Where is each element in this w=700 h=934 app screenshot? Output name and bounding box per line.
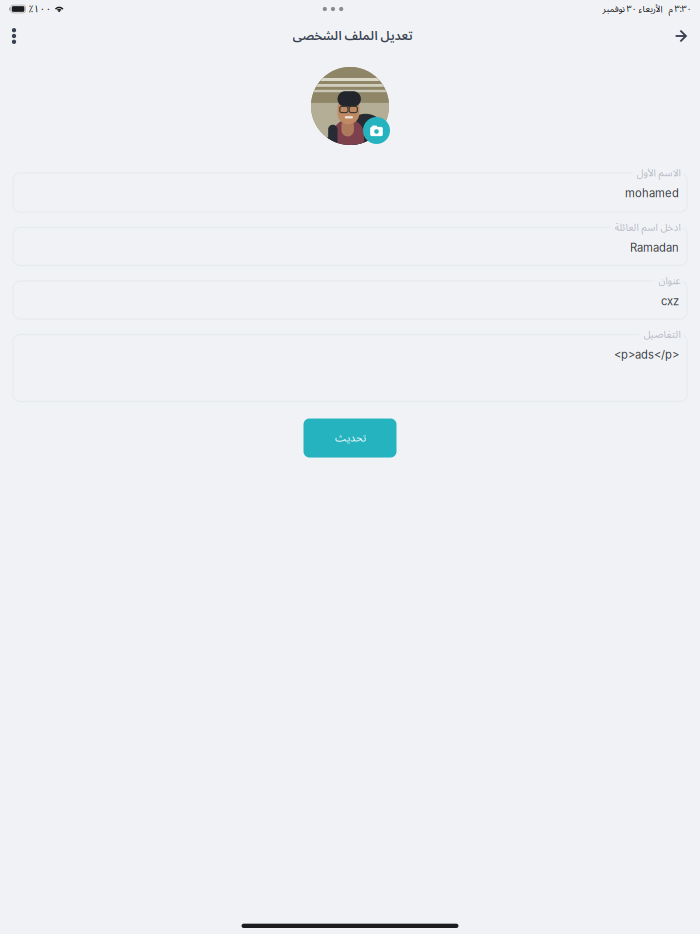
staticText: cxz	[661, 294, 679, 308]
staticText: التفاصيل	[643, 324, 680, 345]
staticText: تحديث	[334, 427, 365, 449]
button[interactable]: More options	[0, 19, 28, 53]
button[interactable]: Back	[668, 19, 694, 53]
staticText: ٪١٠٠	[28, 0, 51, 19]
button[interactable]: Change profile photo	[310, 67, 390, 145]
staticText: الاسم الأول	[636, 162, 680, 183]
staticText: mohamed	[625, 186, 679, 200]
staticText: Ramadan	[630, 241, 679, 255]
staticText: <p>ads</p>	[614, 348, 679, 362]
staticText: ادخل اسم العائلة	[614, 217, 680, 238]
button[interactable]: تحديث	[303, 418, 396, 457]
staticText: عنوان	[658, 270, 680, 291]
staticText: تعديل الملف الشخصى	[292, 23, 412, 49]
staticText: ٣:٣٠ م الأربعاء ٣٠ نوفمبر	[602, 0, 691, 18]
